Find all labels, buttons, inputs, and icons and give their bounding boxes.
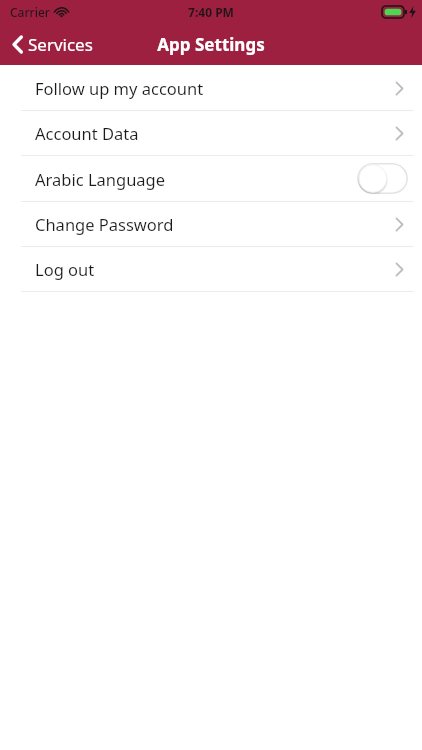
- staticText: Log out: [35, 258, 95, 280]
- button[interactable]: Follow up my account: [0, 66, 422, 110]
- button[interactable]: Log out: [0, 247, 422, 291]
- button[interactable]: Account Data: [0, 111, 422, 155]
- staticText: 7:40 PM: [188, 4, 234, 20]
- staticText: Follow up my account: [35, 77, 204, 99]
- button[interactable]: Change Password: [0, 202, 422, 246]
- button[interactable]: Arabic Language toggle: [357, 163, 408, 194]
- staticText: Arabic Language: [35, 168, 166, 190]
- staticText: App Settings: [157, 33, 265, 56]
- staticText: Change Password: [35, 213, 174, 235]
- staticText: Services: [28, 33, 93, 56]
- button[interactable]: Services: [0, 27, 105, 62]
- staticText: Carrier: [10, 4, 50, 20]
- staticText: Account Data: [35, 122, 139, 144]
